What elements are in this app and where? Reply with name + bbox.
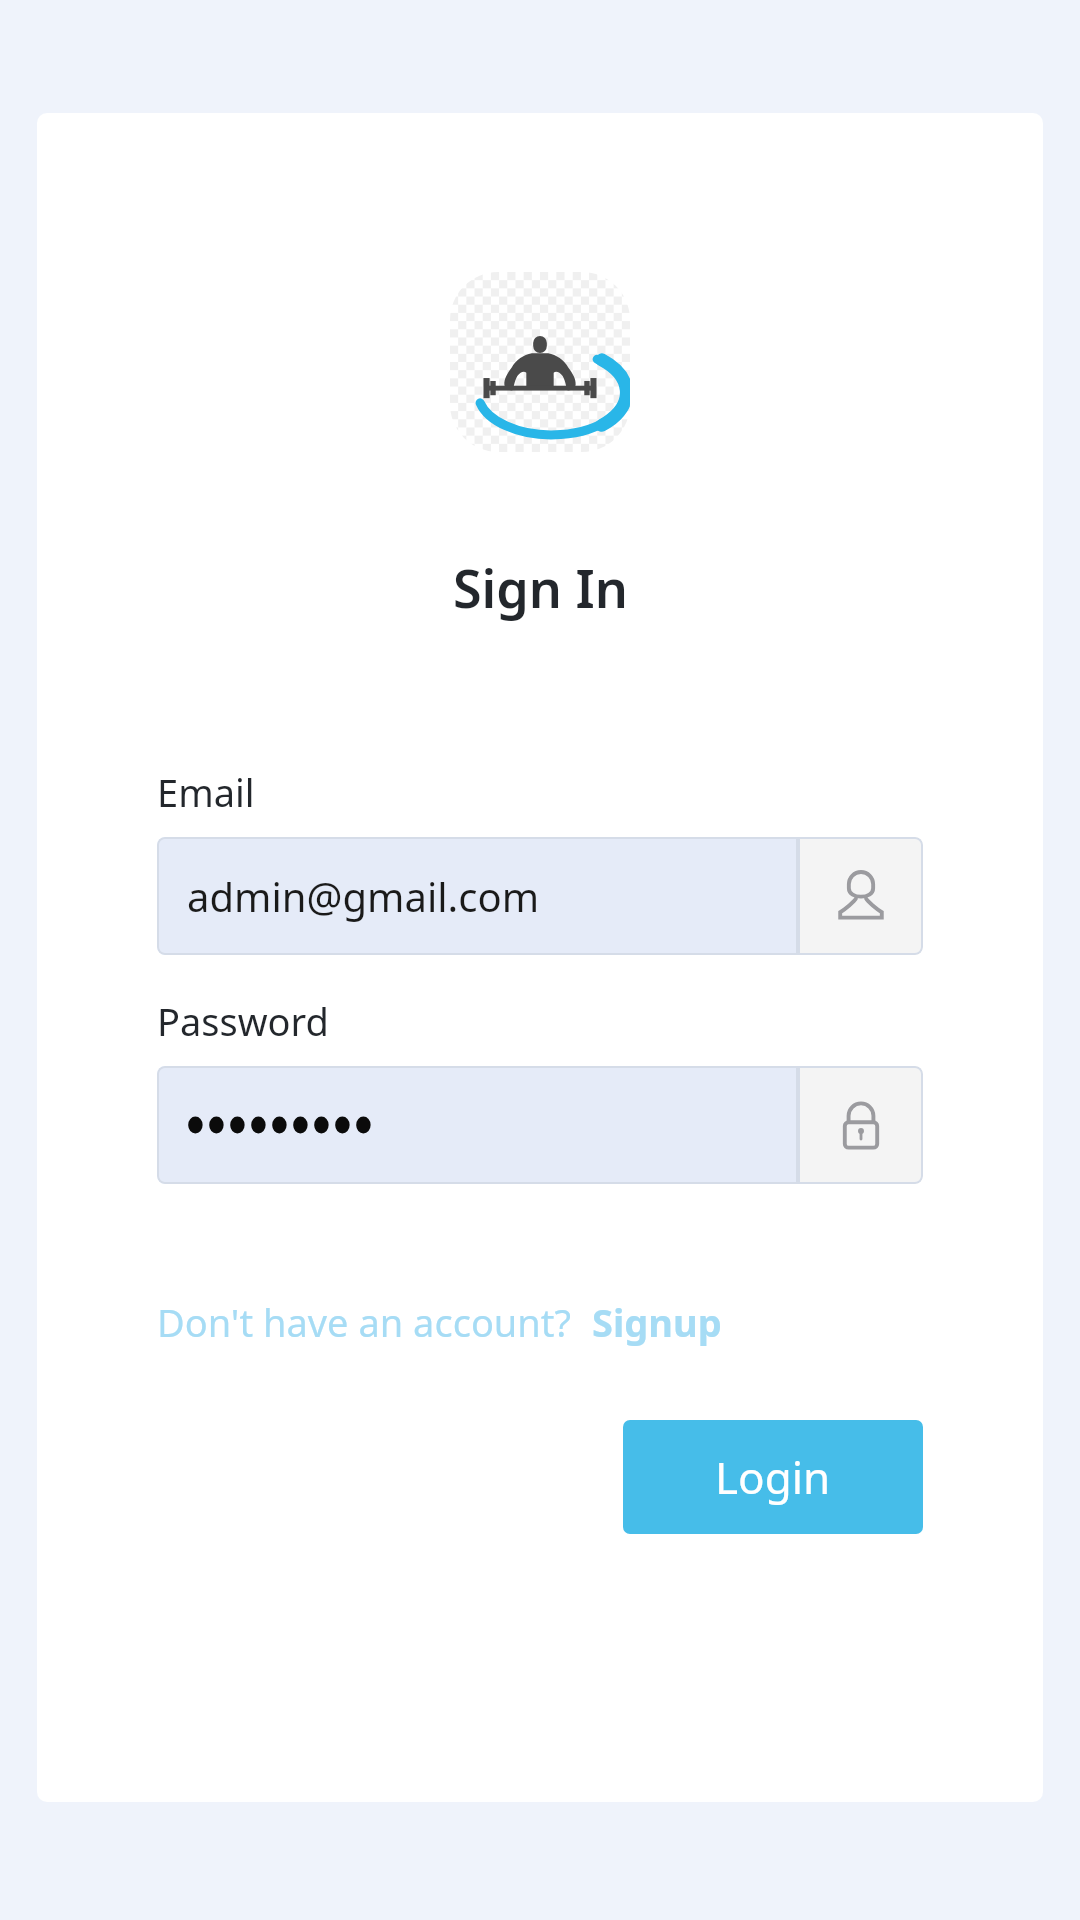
button[interactable] [157,1066,798,1184]
button[interactable]: User [798,837,923,955]
staticText: Email [157,766,255,818]
staticText: Password [157,995,329,1047]
staticText: Don't have an account? [157,1296,572,1348]
button[interactable]: admin@gmail.com [157,837,798,955]
staticText: Sign In [453,552,628,623]
staticText: Login [715,1447,831,1507]
staticText: admin@gmail.com [187,869,540,923]
button[interactable]: Password [798,1066,923,1184]
button[interactable]: Don't have an account? [157,1296,572,1348]
button[interactable]: Signup [592,1296,722,1348]
button[interactable]: Login [623,1420,923,1534]
staticText: Signup [592,1296,722,1348]
